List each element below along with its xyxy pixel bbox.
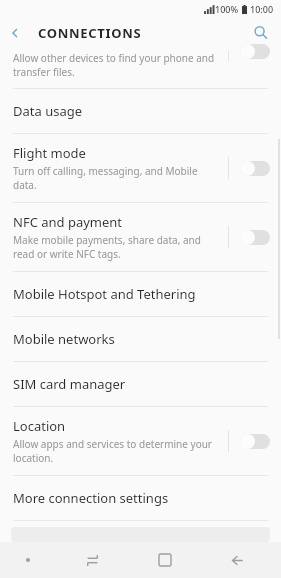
button[interactable]: Home <box>129 542 201 578</box>
button[interactable]: SIM card manager <box>0 362 281 406</box>
staticText: More connection settings <box>13 489 169 507</box>
button[interactable]: Recents <box>56 542 129 578</box>
staticText: Mobile Hotspot and Tethering <box>13 285 196 303</box>
button[interactable]: Allow other devices to find your phone a… <box>0 47 281 88</box>
staticText: NFC and payment <box>13 213 123 231</box>
button[interactable]: Back <box>201 542 273 578</box>
staticText: Location <box>13 417 66 435</box>
button[interactable]: NFC and payment <box>0 203 281 271</box>
staticText: Mobile networks <box>13 330 115 348</box>
staticText: 100% <box>215 3 239 15</box>
button[interactable]: Keyboard indicator <box>0 542 56 578</box>
button[interactable]: Mobile Hotspot and Tethering <box>0 272 281 316</box>
button[interactable]: Search <box>245 18 275 47</box>
staticText: Flight mode <box>13 144 86 162</box>
staticText: 10:00 <box>250 3 274 15</box>
button[interactable]: More connection settings <box>0 476 281 520</box>
staticText: Turn off calling, messaging, and Mobile … <box>13 164 198 192</box>
button[interactable]: Flight mode <box>0 134 281 202</box>
staticText: Data usage <box>13 102 83 120</box>
staticText: Allow apps and services to determine you… <box>13 437 212 465</box>
staticText: Allow other devices to find your phone a… <box>13 51 222 79</box>
button[interactable]: Back <box>0 18 30 47</box>
button[interactable]: Data usage <box>0 89 281 133</box>
staticText: CONNECTIONS <box>38 24 142 42</box>
staticText: Make mobile payments, share data, and re… <box>13 233 201 261</box>
staticText: SIM card manager <box>13 375 126 393</box>
button[interactable]: Location <box>0 407 281 475</box>
button[interactable]: Mobile networks <box>0 317 281 361</box>
